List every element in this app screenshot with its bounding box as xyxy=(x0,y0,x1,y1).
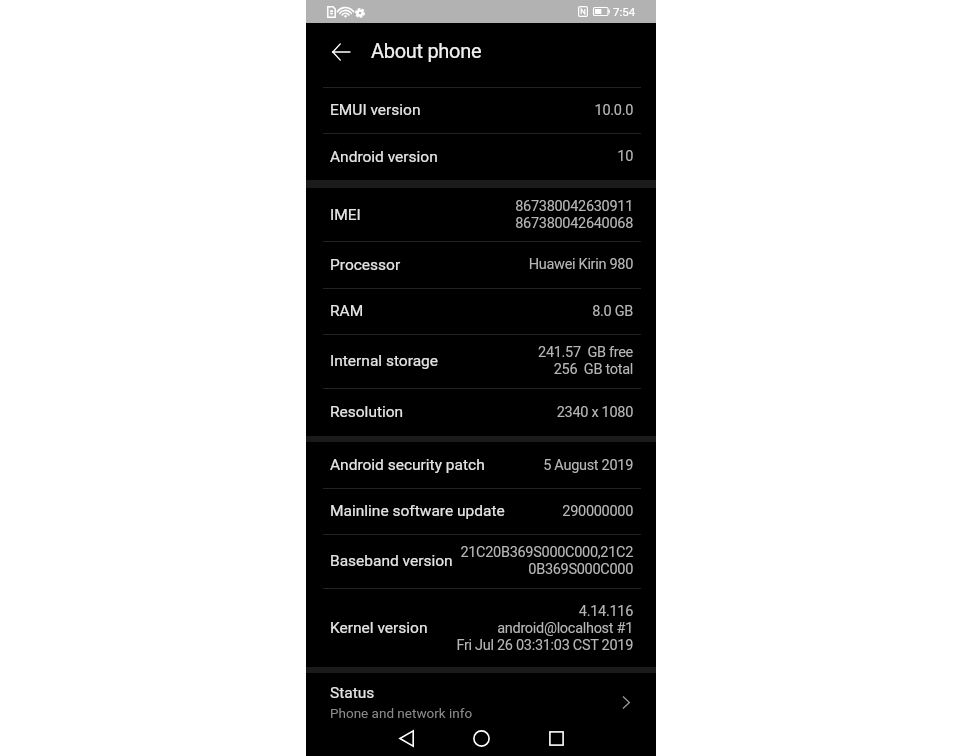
button[interactable]: Back xyxy=(306,18,371,82)
button[interactable]: Processor xyxy=(306,241,656,288)
staticText: Mainline software update xyxy=(330,502,505,520)
staticText: Resolution xyxy=(330,403,404,421)
staticText: 4.14.116 xyxy=(578,603,633,620)
button[interactable]: IMEI xyxy=(306,188,656,241)
staticText: 21C20B369S000C000,21C2 xyxy=(460,544,633,561)
button[interactable]: Recents xyxy=(519,722,595,756)
button[interactable]: Android version xyxy=(306,133,656,180)
staticText: Kernel version xyxy=(330,619,428,637)
staticText: 2340 x 1080 xyxy=(556,404,633,421)
staticText: 8.0 GB xyxy=(592,303,633,320)
button[interactable]: Baseband version xyxy=(306,534,656,588)
staticText: android@localhost #1 xyxy=(497,620,633,637)
button[interactable]: Status xyxy=(306,673,656,727)
staticText: 10 xyxy=(617,148,633,165)
button[interactable]: Internal storage xyxy=(306,334,656,388)
staticText: 241.57 GB free xyxy=(538,344,633,361)
button[interactable]: EMUI version xyxy=(306,87,656,133)
staticText: 256 GB total xyxy=(553,361,633,378)
staticText: Processor xyxy=(330,256,401,274)
button[interactable]: Home xyxy=(443,722,519,756)
button[interactable]: Kernel version xyxy=(306,588,656,667)
staticText: Fri Jul 26 03:31:03 CST 2019 xyxy=(456,637,633,654)
staticText: Huawei Kirin 980 xyxy=(528,256,633,273)
button[interactable]: RAM xyxy=(306,288,656,334)
staticText: IMEI xyxy=(330,206,361,224)
staticText: 0B369S000C000 xyxy=(528,561,633,578)
staticText: 7:54 xyxy=(613,5,636,18)
staticText: 10.0.0 xyxy=(594,102,633,119)
staticText: 290000000 xyxy=(562,503,633,520)
staticText: 867380042640068 xyxy=(515,215,633,232)
button[interactable]: Back xyxy=(367,722,443,756)
staticText: 5 August 2019 xyxy=(543,457,633,474)
staticText: EMUI version xyxy=(330,101,421,119)
staticText: Baseband version xyxy=(330,552,453,570)
staticText: About phone xyxy=(371,39,482,62)
staticText: Phone and network info xyxy=(330,705,473,721)
button[interactable]: Resolution xyxy=(306,388,656,436)
staticText: Status xyxy=(330,684,375,702)
button[interactable]: Android security patch xyxy=(306,442,656,488)
button[interactable]: Mainline software update xyxy=(306,488,656,534)
staticText: Android version xyxy=(330,148,438,166)
staticText: Android security patch xyxy=(330,456,485,474)
staticText: RAM xyxy=(330,302,364,320)
staticText: Internal storage xyxy=(330,352,438,370)
staticText: 867380042630911 xyxy=(515,198,633,215)
